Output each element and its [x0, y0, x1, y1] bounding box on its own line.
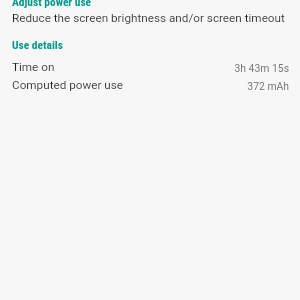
staticText: Reduce the screen brightness and/or scre… — [12, 11, 285, 25]
staticText: 3h 43m 15s — [0, 62, 289, 74]
staticText: Time on — [12, 60, 55, 74]
staticText: Use details — [12, 38, 63, 51]
staticText: Computed power use — [12, 78, 124, 92]
staticText: Adjust power use — [12, 0, 92, 8]
staticText: 372 mAh — [0, 80, 289, 92]
